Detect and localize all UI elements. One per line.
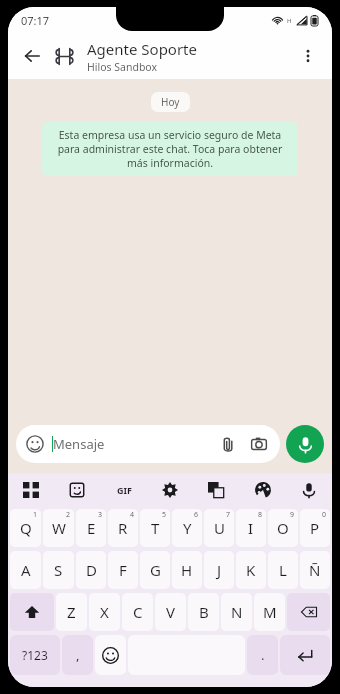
staticText: B xyxy=(199,602,209,622)
staticText: R xyxy=(118,518,128,538)
staticText: GIF xyxy=(117,484,132,496)
staticText: N xyxy=(231,602,243,622)
staticText: J xyxy=(217,560,222,580)
button[interactable]: Shift xyxy=(10,593,54,631)
staticText: 5 xyxy=(162,510,167,520)
staticText: U xyxy=(214,518,225,538)
button[interactable]: X xyxy=(89,593,120,631)
button[interactable]: M xyxy=(254,593,285,631)
button[interactable]: K xyxy=(236,551,266,589)
staticText: 6 xyxy=(194,510,199,520)
staticText: O xyxy=(277,518,289,538)
staticText: K xyxy=(246,560,256,580)
button[interactable]: B xyxy=(188,593,219,631)
button[interactable]: Settings xyxy=(157,477,183,503)
staticText: P xyxy=(310,518,320,538)
button[interactable]: D xyxy=(76,551,106,589)
button[interactable]: Y xyxy=(172,509,202,547)
staticText: 9 xyxy=(290,510,295,520)
staticText: S xyxy=(54,560,63,580)
staticText: 8 xyxy=(258,510,263,520)
staticText: L xyxy=(279,560,287,580)
staticText: ?123 xyxy=(22,647,48,663)
button[interactable]: Ñ xyxy=(300,551,330,589)
button[interactable]: Emoji xyxy=(95,635,126,675)
staticText: W xyxy=(52,518,66,538)
button[interactable]: ?123 xyxy=(10,635,60,675)
button[interactable]: U xyxy=(204,509,234,547)
staticText: 2 xyxy=(66,510,71,520)
button[interactable]: Backspace xyxy=(287,593,330,631)
staticText: , xyxy=(76,646,80,664)
button[interactable]: Agente Soporte xyxy=(87,39,295,74)
button[interactable]: E xyxy=(76,509,106,547)
button[interactable]: Z xyxy=(56,593,87,631)
button[interactable]: Q xyxy=(10,509,41,547)
button[interactable]: G xyxy=(140,551,170,589)
staticText: A xyxy=(21,560,31,580)
button[interactable]: R xyxy=(108,509,138,547)
staticText: 1 xyxy=(33,510,38,520)
button[interactable]: S xyxy=(43,551,74,589)
staticText: Y xyxy=(183,518,192,538)
staticText: 0 xyxy=(322,510,327,520)
staticText: Z xyxy=(67,602,76,622)
button[interactable]: Back xyxy=(19,43,45,69)
button[interactable]: Apps xyxy=(18,477,44,503)
staticText: Agente Soporte xyxy=(87,39,197,59)
button[interactable]: I xyxy=(236,509,266,547)
button[interactable]: N xyxy=(221,593,252,631)
staticText: F xyxy=(119,560,127,580)
button[interactable]: P xyxy=(300,509,330,547)
staticText: X xyxy=(100,602,109,622)
button[interactable]: Enter xyxy=(280,635,330,675)
staticText: T xyxy=(151,518,160,538)
button[interactable]: C xyxy=(122,593,153,631)
button[interactable]: More options xyxy=(295,43,321,69)
button[interactable]: V xyxy=(155,593,186,631)
button[interactable]: T xyxy=(140,509,170,547)
staticText: I xyxy=(248,518,254,538)
staticText: H xyxy=(287,17,292,25)
button[interactable]: F xyxy=(108,551,138,589)
button[interactable]: Esta empresa usa un servicio seguro de M… xyxy=(42,122,298,176)
button[interactable]: Translate xyxy=(203,477,229,503)
button[interactable]: Voice message xyxy=(286,425,324,463)
staticText: V xyxy=(166,602,176,622)
staticText: G xyxy=(150,560,161,580)
button[interactable]: H xyxy=(172,551,202,589)
staticText: Hoy xyxy=(161,95,180,109)
button[interactable]: Voice input xyxy=(296,477,322,503)
button[interactable]: Camera xyxy=(248,433,270,455)
button[interactable]: L xyxy=(268,551,298,589)
staticText: 7 xyxy=(226,510,231,520)
button[interactable]: GIF xyxy=(111,477,137,503)
staticText: . xyxy=(261,646,265,664)
button[interactable]: Mensaje xyxy=(16,425,280,463)
button[interactable]: , xyxy=(62,635,93,675)
staticText: E xyxy=(87,518,96,538)
staticText: Hilos Sandbox xyxy=(87,60,158,74)
staticText: Ñ xyxy=(309,560,321,580)
staticText: Mensaje xyxy=(53,435,105,453)
staticText: C xyxy=(133,602,143,622)
button[interactable]: O xyxy=(268,509,298,547)
button[interactable]: A xyxy=(10,551,41,589)
staticText: 07:17 xyxy=(21,13,50,28)
staticText: 3 xyxy=(98,510,103,520)
button[interactable]: Attach xyxy=(217,433,239,455)
staticText: 4 xyxy=(130,510,135,520)
button[interactable]: Themes xyxy=(250,477,276,503)
button[interactable]: W xyxy=(43,509,74,547)
staticText: D xyxy=(86,560,97,580)
button[interactable]: Stickers xyxy=(64,477,90,503)
staticText: Esta empresa usa un servicio seguro de M… xyxy=(50,128,290,170)
button[interactable]: Hoy xyxy=(161,95,180,109)
staticText: Q xyxy=(20,518,32,538)
staticText: H xyxy=(181,560,193,580)
button[interactable]: . xyxy=(247,635,278,675)
staticText: M xyxy=(263,602,277,622)
button[interactable]: J xyxy=(204,551,234,589)
